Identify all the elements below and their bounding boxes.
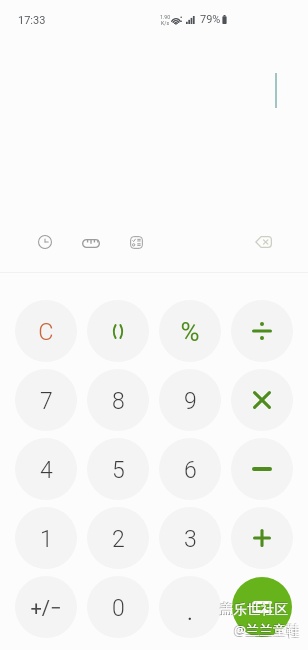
button[interactable]: % xyxy=(159,300,221,362)
button[interactable]: 9 xyxy=(159,369,221,431)
button[interactable]: History xyxy=(28,225,62,259)
button[interactable]: Multiply xyxy=(231,369,293,431)
staticText: 79% xyxy=(200,13,221,26)
staticText: 8 xyxy=(112,388,125,415)
button[interactable]: Scientific calculator xyxy=(119,225,153,259)
staticText: @兰兰童鞋 xyxy=(233,620,299,638)
button[interactable]: Divide xyxy=(231,300,293,362)
staticText: 2 xyxy=(112,526,125,553)
staticText: 盖乐世社区 xyxy=(220,601,288,618)
button[interactable]: 4 xyxy=(15,438,77,500)
staticText: 1 xyxy=(40,526,53,553)
staticText: 7 xyxy=(40,388,53,415)
button[interactable]: Equals xyxy=(232,577,292,637)
button[interactable]: Minus xyxy=(231,438,293,500)
staticText: 9 xyxy=(184,388,197,415)
button[interactable]: 8 xyxy=(87,369,149,431)
staticText: @兰兰童鞋 xyxy=(234,620,300,638)
staticText: 盖乐世社区 xyxy=(220,600,288,617)
staticText: +/− xyxy=(30,596,62,619)
staticText: 盖乐世社区 xyxy=(219,601,287,618)
staticText: 盖乐世社区 xyxy=(220,601,288,618)
button[interactable]: 0 xyxy=(87,576,149,638)
staticText: 17:33 xyxy=(18,14,46,27)
staticText: @兰兰童鞋 xyxy=(234,622,300,640)
staticText: 6 xyxy=(184,457,197,484)
button[interactable]: 6 xyxy=(159,438,221,500)
staticText: 3 xyxy=(184,526,197,553)
staticText: C xyxy=(38,318,54,346)
staticText: K/s xyxy=(161,20,170,26)
button[interactable]: 1 xyxy=(15,507,77,569)
staticText: % xyxy=(180,317,200,347)
button[interactable]: 7 xyxy=(15,369,77,431)
staticText: 0 xyxy=(112,595,125,622)
button[interactable]: . xyxy=(159,576,221,638)
staticText: @兰兰童鞋 xyxy=(233,622,299,640)
staticText: 盖乐世社区 xyxy=(219,600,287,617)
button[interactable]: Unit converter xyxy=(74,226,108,260)
staticText: 4 xyxy=(40,457,53,484)
button[interactable]: C xyxy=(15,300,77,362)
button[interactable]: 2 xyxy=(87,507,149,569)
staticText: . xyxy=(187,600,193,626)
button[interactable]: +/− xyxy=(15,576,77,638)
staticText: 1.90 xyxy=(160,14,171,20)
button[interactable]: Parentheses xyxy=(87,300,149,362)
button[interactable]: 3 xyxy=(159,507,221,569)
button[interactable]: Plus xyxy=(231,507,293,569)
staticText: @兰兰童鞋 xyxy=(234,621,300,639)
button[interactable]: 5 xyxy=(87,438,149,500)
button[interactable]: Backspace xyxy=(246,225,280,259)
staticText: 5 xyxy=(112,457,125,484)
